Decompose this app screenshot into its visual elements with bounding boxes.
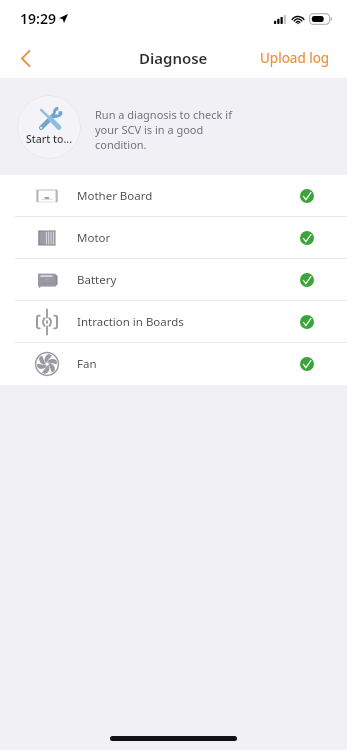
staticText: Run a diagnosis to check if your SCV is … [95,107,232,152]
button[interactable]: Fan [0,343,347,385]
button[interactable]: Mother Board [0,175,347,217]
staticText: Diagnose [139,48,208,68]
staticText: Start to... [26,132,73,146]
staticText: Battery [77,272,117,288]
staticText: Fan [77,356,97,372]
button[interactable]: Back [0,38,50,78]
staticText: Intraction in Boards [77,314,184,330]
button[interactable]: Upload log [246,40,347,76]
staticText: 19:29 [20,9,56,28]
button[interactable]: Start to... [17,95,81,159]
staticText: Upload log [260,49,330,67]
staticText: Motor [77,230,111,246]
button[interactable]: Battery [0,259,347,301]
button[interactable]: Intraction in Boards [0,301,347,343]
staticText: Mother Board [77,188,153,204]
button[interactable]: Motor [0,217,347,259]
